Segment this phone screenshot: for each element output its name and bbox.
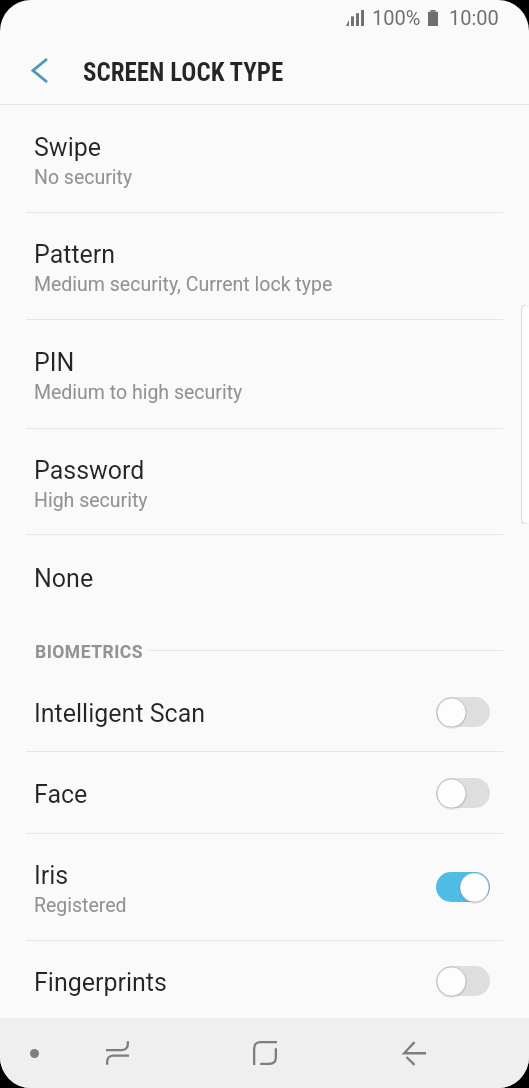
staticText: Medium security, Current lock type xyxy=(34,273,333,296)
staticText: Intelligent Scan xyxy=(34,699,206,728)
staticText: 100% xyxy=(372,6,421,29)
staticText: SCREEN LOCK TYPE xyxy=(83,58,284,87)
button[interactable]: Off xyxy=(436,776,490,810)
button[interactable]: Navigate up xyxy=(17,47,63,93)
button[interactable]: Swipe xyxy=(0,105,529,212)
staticText: Swipe xyxy=(34,133,102,162)
button[interactable]: Fingerprints xyxy=(0,941,529,1020)
button[interactable]: Face xyxy=(0,752,529,833)
staticText: Face xyxy=(34,780,88,809)
staticText: Password xyxy=(34,456,145,485)
staticText: Registered xyxy=(34,894,127,917)
staticText: PIN xyxy=(34,348,75,377)
button[interactable]: Assistant xyxy=(0,1018,68,1088)
button[interactable]: On xyxy=(436,870,490,904)
button[interactable]: Pattern xyxy=(0,213,529,319)
button[interactable]: Off xyxy=(436,695,490,729)
staticText: Iris xyxy=(34,861,69,890)
button[interactable]: Intelligent Scan xyxy=(0,672,529,751)
staticText: Medium to high security xyxy=(34,381,243,404)
staticText: No security xyxy=(34,166,133,189)
button[interactable]: Recent apps xyxy=(83,1018,151,1088)
button[interactable]: PIN xyxy=(0,320,529,428)
button[interactable]: Iris xyxy=(0,834,529,940)
button[interactable]: Home xyxy=(231,1018,299,1088)
button[interactable]: Password xyxy=(0,429,529,534)
staticText: Fingerprints xyxy=(34,968,167,997)
staticText: None xyxy=(34,564,94,593)
staticText: Pattern xyxy=(34,240,116,269)
button[interactable]: Back xyxy=(380,1018,448,1088)
staticText: 10:00 xyxy=(449,6,499,29)
staticText: High security xyxy=(34,489,148,512)
button[interactable]: Off xyxy=(436,964,490,998)
button[interactable]: None xyxy=(0,535,529,617)
staticText: BIOMETRICS xyxy=(35,642,144,663)
